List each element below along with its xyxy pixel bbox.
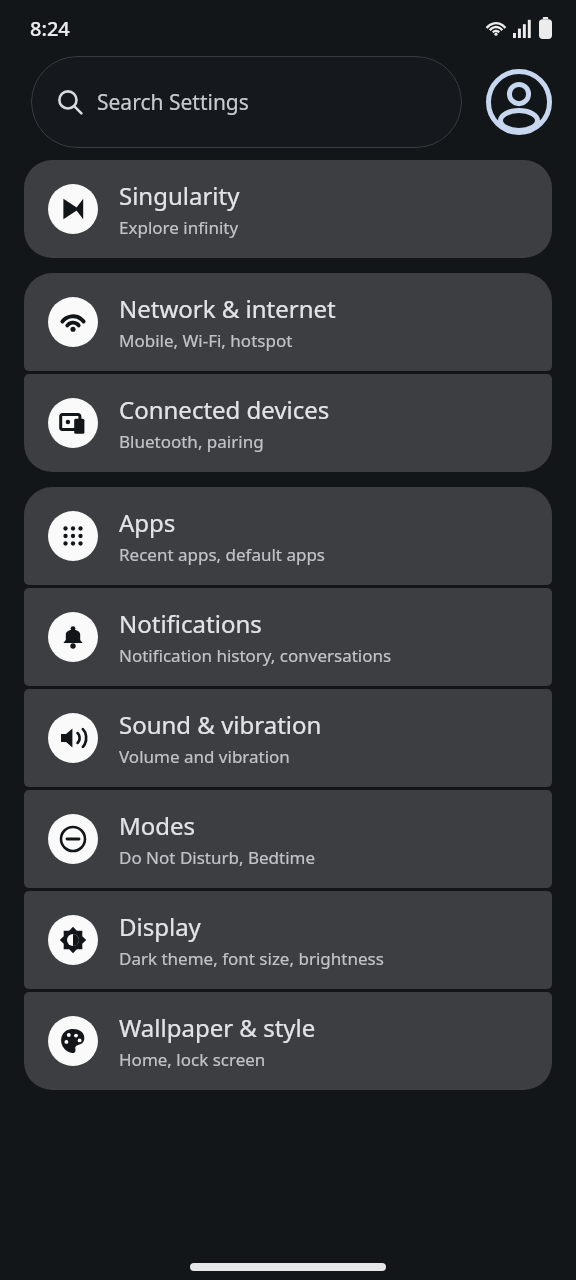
button[interactable]: Connected devices [24,374,552,472]
staticText: Wallpaper & style [119,1011,316,1044]
staticText: Network & internet [119,292,336,325]
staticText: Do Not Disturb, Bedtime [119,846,316,869]
staticText: Connected devices [119,393,330,426]
staticText: Singularity [119,179,240,212]
button[interactable]: Network & internet [24,273,552,371]
staticText: Home, lock screen [119,1048,266,1071]
staticText: Search Settings [97,88,249,117]
staticText: Dark theme, font size, brightness [119,947,384,970]
button[interactable]: Display [24,891,552,989]
button[interactable]: Notifications [24,588,552,686]
staticText: Sound & vibration [119,708,322,741]
staticText: Modes [119,809,196,842]
staticText: Bluetooth, pairing [119,430,264,453]
button[interactable]: Search Settings [31,56,462,148]
staticText: Mobile, Wi-Fi, hotspot [119,329,293,352]
button[interactable]: Apps [24,487,552,585]
button[interactable]: Sound & vibration [24,689,552,787]
staticText: Notification history, conversations [119,644,392,667]
staticText: Display [119,910,201,943]
button[interactable]: Singularity [24,160,552,258]
button[interactable]: Wallpaper & style [24,992,552,1090]
staticText: Apps [119,506,176,539]
button[interactable]: Account [486,69,552,135]
button[interactable]: Modes [24,790,552,888]
staticText: Volume and vibration [119,745,290,768]
staticText: 8:24 [30,15,70,42]
staticText: Explore infinity [119,216,239,239]
staticText: Notifications [119,607,262,640]
staticText: Recent apps, default apps [119,543,326,566]
